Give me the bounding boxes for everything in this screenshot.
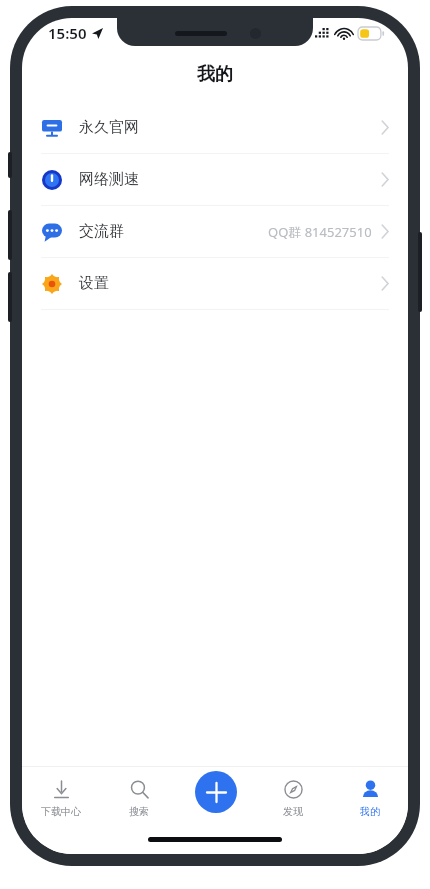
staticText: 15:50 — [48, 23, 87, 43]
button[interactable]: 下载中心 — [22, 778, 100, 818]
button[interactable]: Add — [195, 771, 237, 813]
button[interactable]: 交流群 — [22, 206, 408, 257]
button[interactable]: 网络测速 — [22, 154, 408, 205]
staticText: 我的 — [197, 63, 233, 86]
staticText: 永久官网 — [79, 118, 139, 137]
button[interactable]: 发现 — [254, 778, 331, 818]
staticText: QQ群 814527510 — [268, 223, 372, 241]
staticText: 发现 — [283, 805, 303, 818]
staticText: 交流群 — [79, 222, 124, 241]
button[interactable]: 设置 — [22, 258, 408, 309]
staticText: 搜索 — [129, 805, 149, 818]
staticText: 下载中心 — [41, 805, 81, 818]
button[interactable]: 永久官网 — [22, 102, 408, 153]
staticText: 网络测速 — [79, 170, 139, 189]
staticText: 我的 — [360, 805, 380, 818]
staticText: 设置 — [79, 274, 109, 293]
button[interactable]: 我的 — [331, 778, 408, 818]
button[interactable]: 搜索 — [100, 778, 177, 818]
